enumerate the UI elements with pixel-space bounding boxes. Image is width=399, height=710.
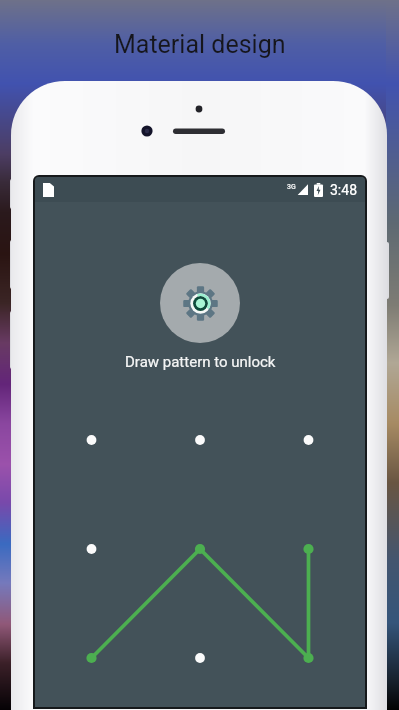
staticText: Material design [114,30,286,59]
button[interactable]: Settings [160,263,240,343]
staticText: 3:48 [330,182,357,198]
staticText: 3G [287,183,296,191]
staticText: Draw pattern to unlock [125,353,276,371]
